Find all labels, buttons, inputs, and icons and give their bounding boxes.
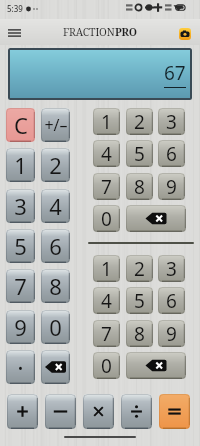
button[interactable]: Backspace — [41, 350, 70, 384]
button[interactable]: · — [6, 350, 35, 384]
button[interactable]: 1 — [6, 148, 35, 182]
button[interactable]: 8 — [126, 320, 153, 347]
button[interactable]: 4 — [41, 189, 70, 223]
button[interactable]: 8 — [126, 173, 153, 200]
staticText: 3 — [166, 256, 177, 282]
button[interactable]: C — [6, 108, 35, 142]
staticText: 4 — [49, 191, 62, 221]
button[interactable]: Backspace — [126, 352, 186, 379]
staticText: 2 — [134, 109, 145, 135]
staticText: 4 — [101, 141, 112, 167]
staticText: 7 — [101, 174, 112, 200]
staticText: 1 — [14, 150, 27, 180]
staticText: +/– — [44, 114, 68, 136]
button[interactable]: 7 — [93, 173, 120, 200]
button[interactable]: Divide — [121, 394, 152, 429]
button[interactable]: Camera — [179, 28, 191, 40]
staticText: C — [14, 110, 28, 140]
staticText: 6 — [166, 288, 177, 314]
button[interactable]: +/– — [41, 108, 70, 142]
staticText: 6 — [49, 231, 62, 261]
staticText: 8 — [134, 321, 145, 347]
button[interactable]: 6 — [41, 229, 70, 263]
staticText: 2 — [49, 150, 62, 180]
staticText: 5 — [134, 288, 145, 314]
button[interactable]: Minus — [45, 394, 76, 429]
staticText: 8 — [134, 174, 145, 200]
button[interactable]: 5 — [6, 229, 35, 263]
staticText: 7 — [14, 271, 27, 301]
staticText: 0 — [101, 353, 112, 379]
staticText: 5:39 — [7, 3, 23, 14]
staticText: 7 — [101, 321, 112, 347]
button[interactable]: 1 — [93, 255, 120, 282]
button[interactable]: 8 — [41, 269, 70, 303]
button[interactable]: 7 — [93, 320, 120, 347]
staticText: 8 — [49, 271, 62, 301]
button[interactable]: 4 — [93, 140, 120, 167]
button[interactable]: 3 — [158, 255, 185, 282]
staticText: 67 — [164, 60, 186, 86]
button[interactable]: 0 — [93, 352, 120, 379]
button[interactable]: 2 — [41, 148, 70, 182]
button[interactable]: 5 — [126, 140, 153, 167]
staticText: 1 — [101, 256, 112, 282]
staticText: 3 — [166, 109, 177, 135]
staticText: 5 — [134, 141, 145, 167]
staticText: 9 — [166, 321, 177, 347]
button[interactable]: 0 — [93, 205, 120, 232]
staticText: 6 — [166, 141, 177, 167]
button[interactable]: 9 — [6, 310, 35, 344]
staticText: 0 — [101, 206, 112, 232]
button[interactable]: Multiply — [83, 394, 114, 429]
button[interactable]: Backspace — [126, 205, 186, 232]
button[interactable]: 5 — [126, 287, 153, 314]
staticText: 9 — [166, 174, 177, 200]
staticText: · — [17, 351, 24, 384]
button[interactable]: Plus — [7, 394, 38, 429]
button[interactable]: 6 — [158, 287, 185, 314]
button[interactable]: 0 — [41, 310, 70, 344]
staticText: 9 — [14, 312, 27, 342]
button[interactable]: 1 — [93, 108, 120, 135]
button[interactable]: 3 — [6, 189, 35, 223]
staticText: 3 — [14, 191, 27, 221]
button[interactable]: 7 — [6, 269, 35, 303]
staticText: 4 — [101, 288, 112, 314]
button[interactable]: 6 — [158, 140, 185, 167]
staticText: 2 — [134, 256, 145, 282]
button[interactable]: 4 — [93, 287, 120, 314]
staticText: 1 — [101, 109, 112, 135]
button[interactable]: 9 — [158, 173, 185, 200]
button[interactable]: Equals — [159, 394, 190, 429]
button[interactable]: 2 — [126, 108, 153, 135]
button[interactable]: Menu — [2, 21, 26, 45]
button[interactable]: 9 — [158, 320, 185, 347]
button[interactable]: 3 — [158, 108, 185, 135]
staticText: 0 — [49, 312, 62, 342]
staticText: FRACTION — [63, 25, 115, 39]
staticText: 5 — [14, 231, 27, 261]
button[interactable]: 2 — [126, 255, 153, 282]
staticText: PRO — [115, 25, 137, 39]
